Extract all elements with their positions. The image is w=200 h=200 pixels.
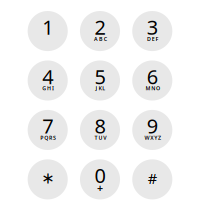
- staticText: MNO: [145, 85, 160, 92]
- button[interactable]: 6 MNO: [132, 60, 172, 101]
- button[interactable]: 0 +: [80, 159, 120, 199]
- staticText: 4: [42, 63, 53, 90]
- staticText: 3: [147, 14, 158, 40]
- staticText: 9: [147, 113, 158, 139]
- button[interactable]: Star key: [28, 159, 68, 199]
- button[interactable]: 4 GHI: [28, 60, 68, 101]
- staticText: 1: [42, 14, 53, 40]
- staticText: GHI: [42, 85, 54, 92]
- staticText: TUV: [95, 134, 106, 141]
- button[interactable]: 9 WXYZ: [132, 110, 172, 150]
- button[interactable]: Pound key: [132, 159, 172, 199]
- staticText: PQRS: [40, 134, 56, 141]
- button[interactable]: 1: [28, 11, 68, 51]
- staticText: 2: [94, 14, 105, 40]
- staticText: 5: [94, 63, 105, 90]
- button[interactable]: 7 PQRS: [28, 110, 68, 150]
- staticText: 0: [94, 162, 105, 189]
- staticText: JKL: [96, 85, 105, 92]
- staticText: 7: [42, 113, 53, 139]
- button[interactable]: 5 JKL: [80, 60, 120, 101]
- button[interactable]: 2 ABC: [80, 11, 120, 51]
- staticText: DEF: [147, 35, 159, 42]
- staticText: WXYZ: [144, 134, 161, 141]
- staticText: ABC: [94, 35, 107, 42]
- staticText: 8: [94, 113, 105, 139]
- button[interactable]: 3 DEF: [132, 11, 172, 51]
- staticText: ∗: [41, 169, 54, 187]
- button[interactable]: 8 TUV: [80, 110, 120, 150]
- staticText: +: [97, 181, 103, 195]
- staticText: 6: [147, 63, 158, 90]
- staticText: #: [148, 168, 157, 188]
